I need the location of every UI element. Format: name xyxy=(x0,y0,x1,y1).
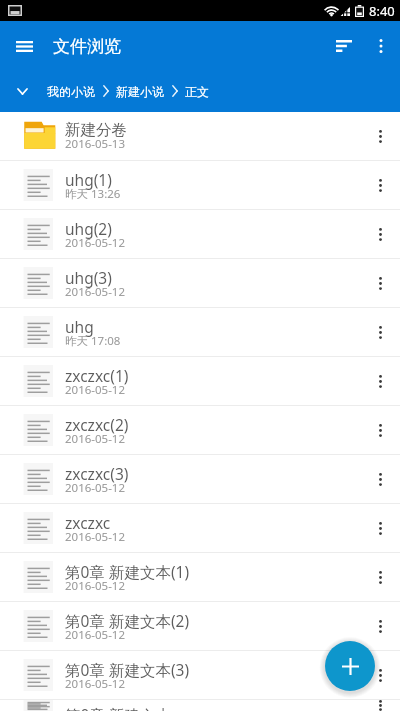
button[interactable]: uhg xyxy=(0,308,400,357)
button[interactable]: Item options xyxy=(360,116,400,156)
staticText: 2016-05-12 xyxy=(65,284,126,300)
button[interactable]: Item options xyxy=(360,655,400,695)
button[interactable]: Add xyxy=(322,638,378,694)
staticText: uhg(3) xyxy=(65,267,112,288)
button[interactable]: zxczxc(2) xyxy=(0,406,400,455)
button[interactable]: 新建小说 xyxy=(116,84,164,99)
staticText: 昨天 17:08 xyxy=(65,333,121,349)
staticText: 文件浏览 xyxy=(53,36,121,57)
button[interactable]: uhg(3) xyxy=(0,259,400,308)
button[interactable]: Item options xyxy=(360,165,400,205)
button[interactable]: 我的小说 xyxy=(47,84,95,99)
button[interactable]: 第0章 新建文本(3) xyxy=(0,651,400,700)
staticText: uhg(1) xyxy=(65,169,112,190)
button[interactable]: zxczxc(3) xyxy=(0,455,400,504)
staticText: 2016-05-12 xyxy=(65,431,126,447)
button[interactable]: Menu xyxy=(4,26,44,66)
staticText: uhg xyxy=(65,316,94,337)
button[interactable]: Item options xyxy=(360,459,400,499)
button[interactable]: Item options xyxy=(360,361,400,401)
staticText: 2016-05-12 xyxy=(65,480,126,496)
staticText: 8:40 xyxy=(369,2,395,20)
button[interactable]: 第0章 新建文本 xyxy=(0,700,400,711)
button[interactable]: 第0章 新建文本(2) xyxy=(0,602,400,651)
staticText: 2016-05-13 xyxy=(65,136,126,152)
button[interactable]: More options xyxy=(364,29,398,63)
staticText: 2016-05-12 xyxy=(65,627,126,643)
button[interactable]: 新建分卷 xyxy=(0,112,400,161)
staticText: 2016-05-12 xyxy=(65,235,126,251)
staticText: 第0章 新建文本(3) xyxy=(65,659,190,680)
staticText: zxczxc(3) xyxy=(65,463,129,484)
staticText: zxczxc(1) xyxy=(65,365,129,386)
staticText: 第0章 新建文本(1) xyxy=(65,561,190,582)
staticText: 2016-05-12 xyxy=(65,529,126,545)
button[interactable]: Item options xyxy=(360,508,400,548)
staticText: 2016-05-12 xyxy=(65,382,126,398)
staticText: zxczxc xyxy=(65,512,111,533)
button[interactable]: Item options xyxy=(360,312,400,352)
staticText: 第0章 新建文本(2) xyxy=(65,610,190,631)
button[interactable]: 第0章 新建文本(1) xyxy=(0,553,400,602)
staticText: 2016-05-12 xyxy=(65,676,126,692)
staticText: 2016-05-12 xyxy=(65,578,126,594)
button[interactable]: Item options xyxy=(360,263,400,303)
button[interactable]: uhg(1) xyxy=(0,161,400,210)
staticText: 昨天 13:26 xyxy=(65,186,121,202)
button[interactable]: Item options xyxy=(360,557,400,597)
button[interactable]: uhg(2) xyxy=(0,210,400,259)
button[interactable]: Item options xyxy=(360,410,400,450)
button[interactable]: Item options xyxy=(360,214,400,254)
button[interactable]: Collapse path xyxy=(4,73,40,109)
button[interactable]: zxczxc xyxy=(0,504,400,553)
button[interactable]: Item options xyxy=(360,700,400,711)
button[interactable]: Item options xyxy=(360,606,400,646)
button[interactable]: Sort xyxy=(324,26,364,66)
staticText: 新建分卷 xyxy=(65,120,127,140)
staticText: uhg(2) xyxy=(65,218,112,239)
staticText: 第0章 新建文本 xyxy=(65,704,171,711)
button[interactable]: 正文 xyxy=(185,84,209,99)
button[interactable]: zxczxc(1) xyxy=(0,357,400,406)
staticText: zxczxc(2) xyxy=(65,414,129,435)
